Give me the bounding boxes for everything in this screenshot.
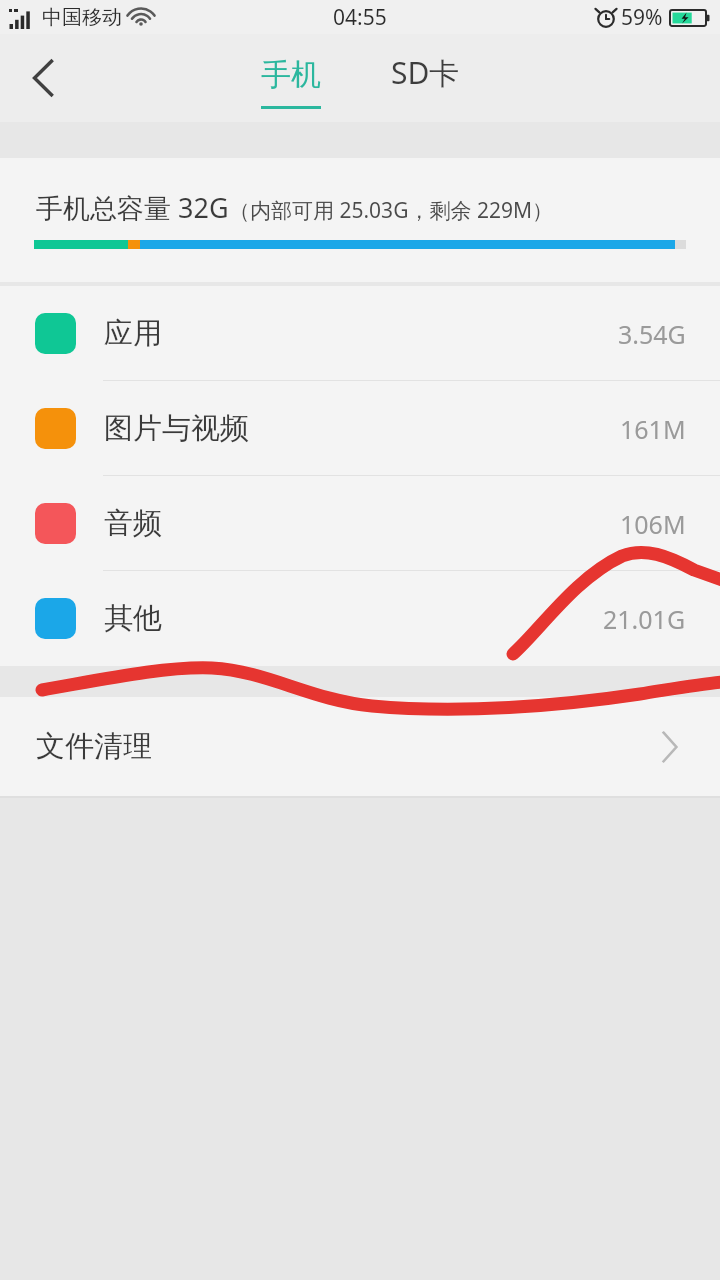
staticText: 应用 bbox=[104, 315, 618, 352]
button[interactable]: 应用 bbox=[0, 286, 720, 381]
button[interactable]: 文件清理 bbox=[0, 697, 720, 796]
staticText: SD卡 bbox=[391, 52, 460, 93]
staticText: 中国移动 bbox=[42, 5, 122, 30]
staticText: 图片与视频 bbox=[104, 410, 620, 447]
staticText: 59% bbox=[621, 3, 663, 32]
button[interactable]: SD卡 bbox=[360, 34, 490, 122]
button[interactable]: 手机 bbox=[240, 34, 342, 122]
staticText: 音频 bbox=[104, 505, 620, 542]
staticText: 其他 bbox=[104, 600, 603, 637]
staticText: 161M bbox=[620, 412, 686, 446]
staticText: （内部可用 25.03G，剩余 229M） bbox=[229, 196, 553, 225]
button[interactable]: 音频 bbox=[0, 476, 720, 571]
button[interactable]: 其他 bbox=[0, 571, 720, 666]
staticText: 21.01G bbox=[603, 602, 686, 636]
staticText: 文件清理 bbox=[36, 728, 152, 765]
button[interactable]: Back bbox=[0, 34, 88, 122]
staticText: 04:55 bbox=[333, 3, 387, 32]
staticText: 3.54G bbox=[618, 317, 686, 351]
staticText: 106M bbox=[620, 507, 686, 541]
staticText: 手机 bbox=[261, 56, 321, 94]
staticText: 手机总容量 32G bbox=[36, 189, 229, 226]
button[interactable]: 图片与视频 bbox=[0, 381, 720, 476]
